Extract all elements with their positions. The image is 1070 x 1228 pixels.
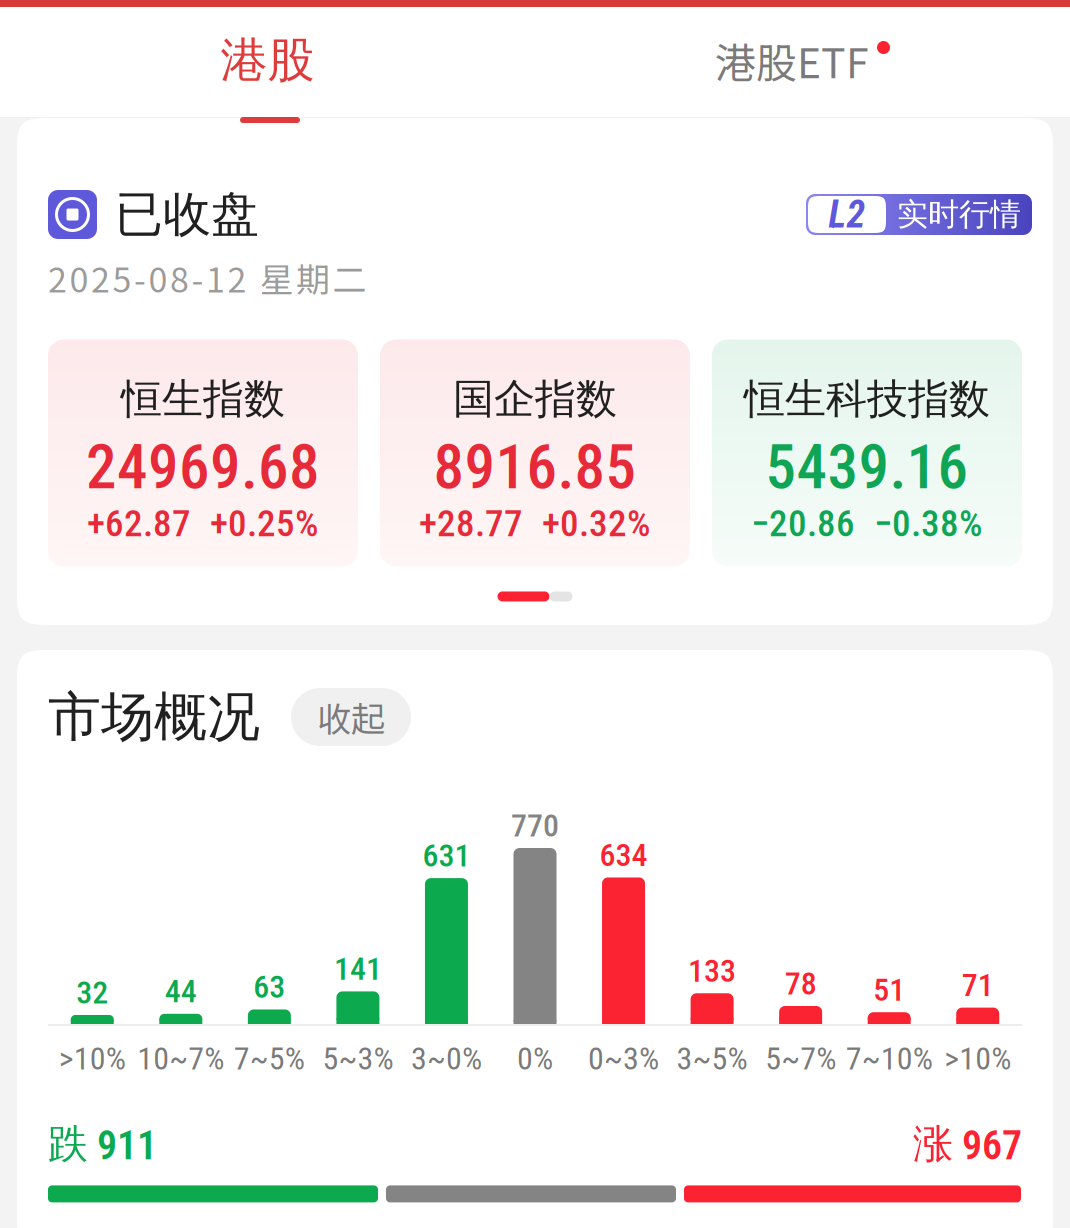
staticText: 涨 967 — [913, 1126, 1022, 1162]
staticText: +0.25% — [210, 508, 319, 539]
staticText: 5439.16 — [765, 442, 968, 493]
staticText: 2025-08-12 星期二 — [48, 260, 366, 295]
staticText: 634 — [599, 841, 647, 868]
button[interactable]: 收起 — [291, 688, 411, 746]
staticText: 0% — [517, 1045, 553, 1072]
staticText: +62.87 — [87, 508, 191, 539]
staticText: 7~10% — [846, 1045, 933, 1072]
staticText: −20.86 — [751, 508, 855, 539]
staticText: 港股ETF — [715, 39, 869, 82]
staticText: 恒生科技指数 — [744, 380, 990, 418]
button[interactable]: 国企指数 — [380, 339, 690, 566]
staticText: 51 — [873, 976, 905, 1003]
staticText: 国企指数 — [453, 380, 617, 418]
staticText: 133 — [688, 957, 736, 984]
button[interactable]: 恒生科技指数 — [712, 339, 1022, 566]
staticText: 63 — [253, 973, 285, 1000]
staticText: 78 — [785, 970, 817, 997]
staticText: 32 — [76, 979, 108, 1006]
staticText: 24969.68 — [86, 442, 320, 493]
button[interactable]: 港股 — [0, 7, 535, 118]
staticText: 3~0% — [411, 1045, 482, 1072]
staticText: L2 — [828, 198, 865, 231]
staticText: 7~5% — [234, 1045, 305, 1072]
staticText: 44 — [165, 978, 197, 1005]
staticText: 8916.85 — [433, 442, 636, 493]
staticText: >10% — [59, 1045, 126, 1072]
staticText: 港股 — [220, 39, 314, 82]
staticText: −0.38% — [874, 508, 983, 539]
staticText: 市场概况 — [48, 693, 260, 741]
staticText: 5~7% — [765, 1045, 836, 1072]
staticText: 已收盘 — [115, 193, 259, 236]
staticText: 恒生指数 — [121, 380, 285, 418]
staticText: 收起 — [317, 699, 385, 735]
button[interactable]: L2 — [806, 194, 1032, 235]
staticText: 实时行情 — [897, 200, 1021, 228]
button[interactable]: 港股ETF — [535, 7, 1070, 118]
button[interactable]: 恒生指数 — [48, 339, 358, 566]
staticText: +28.77 — [419, 508, 523, 539]
staticText: >10% — [944, 1045, 1011, 1072]
staticText: 631 — [422, 842, 470, 869]
staticText: 跌 911 — [48, 1126, 157, 1162]
staticText: 3~5% — [677, 1045, 748, 1072]
staticText: +0.32% — [542, 508, 651, 539]
staticText: 71 — [962, 972, 994, 999]
staticText: 10~7% — [137, 1045, 224, 1072]
staticText: 5~3% — [322, 1045, 393, 1072]
staticText: 770 — [511, 812, 559, 839]
staticText: 0~3% — [588, 1045, 659, 1072]
staticText: 141 — [334, 955, 382, 982]
